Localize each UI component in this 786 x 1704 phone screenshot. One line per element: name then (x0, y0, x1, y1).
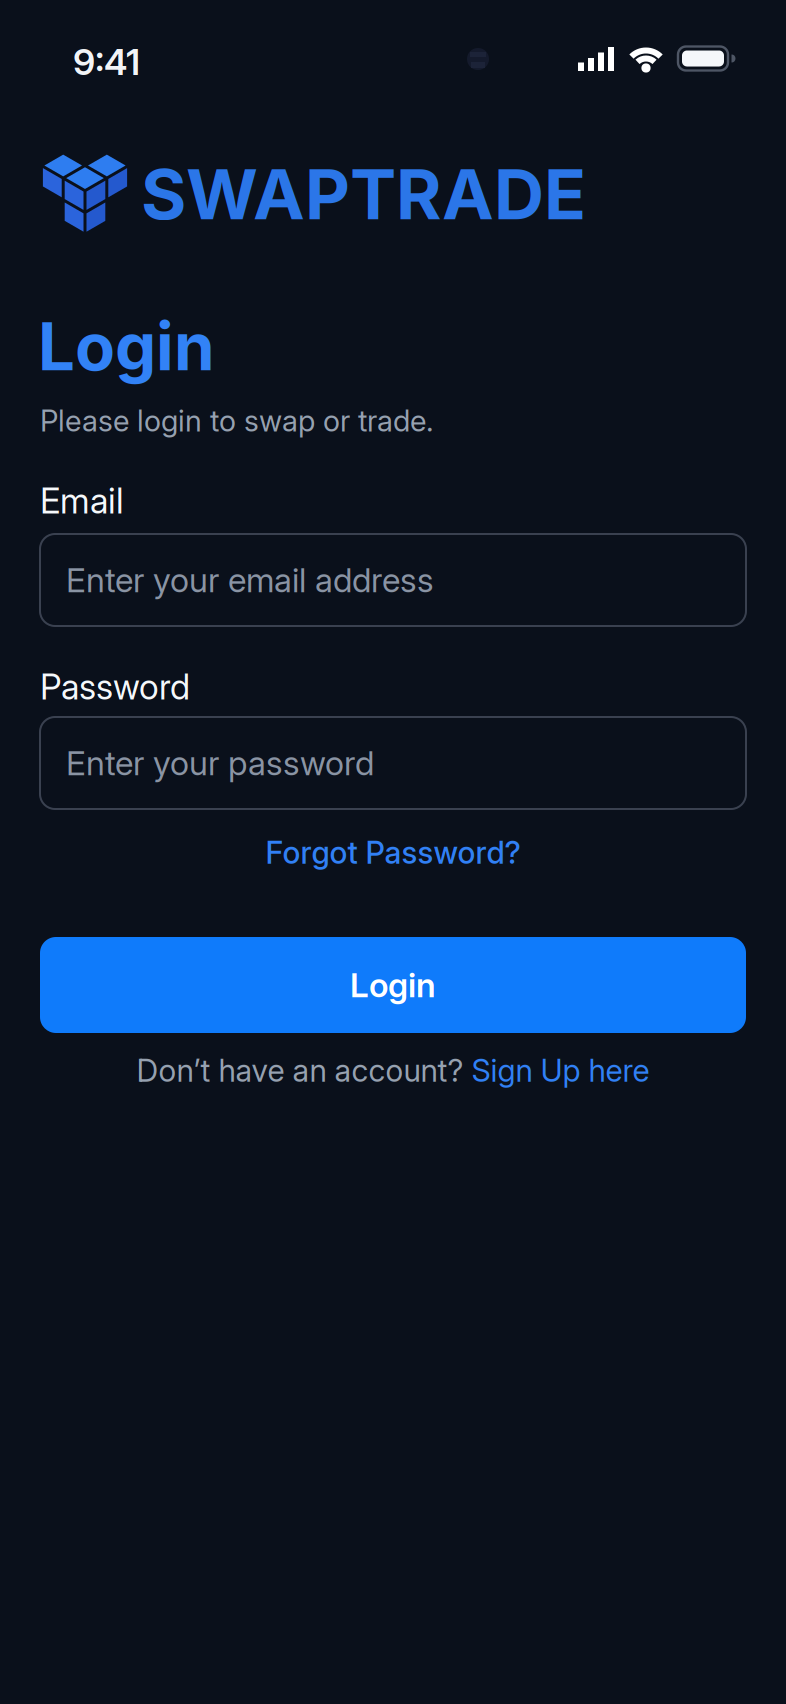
button[interactable]: Forgot Password? (265, 834, 520, 871)
staticText: Enter your email address (66, 560, 434, 600)
button[interactable]: Enter your email address (40, 534, 746, 626)
button[interactable]: Sign Up here (471, 1052, 649, 1089)
staticText: Don’t have an account? (136, 1052, 471, 1089)
staticText: Login (38, 307, 215, 386)
button[interactable]: Enter your password (40, 717, 746, 809)
staticText: Password (40, 666, 190, 708)
staticText: Enter your password (66, 743, 374, 783)
staticText: Login (350, 965, 436, 1005)
staticText: Please login to swap or trade. (40, 403, 434, 438)
staticText: Email (40, 480, 124, 522)
staticText: Forgot Password? (265, 834, 520, 871)
staticText: 9:41 (73, 40, 140, 84)
button[interactable]: Login (40, 937, 746, 1033)
staticText: Sign Up here (471, 1052, 649, 1089)
staticText: SWAPTRADE (141, 152, 586, 236)
